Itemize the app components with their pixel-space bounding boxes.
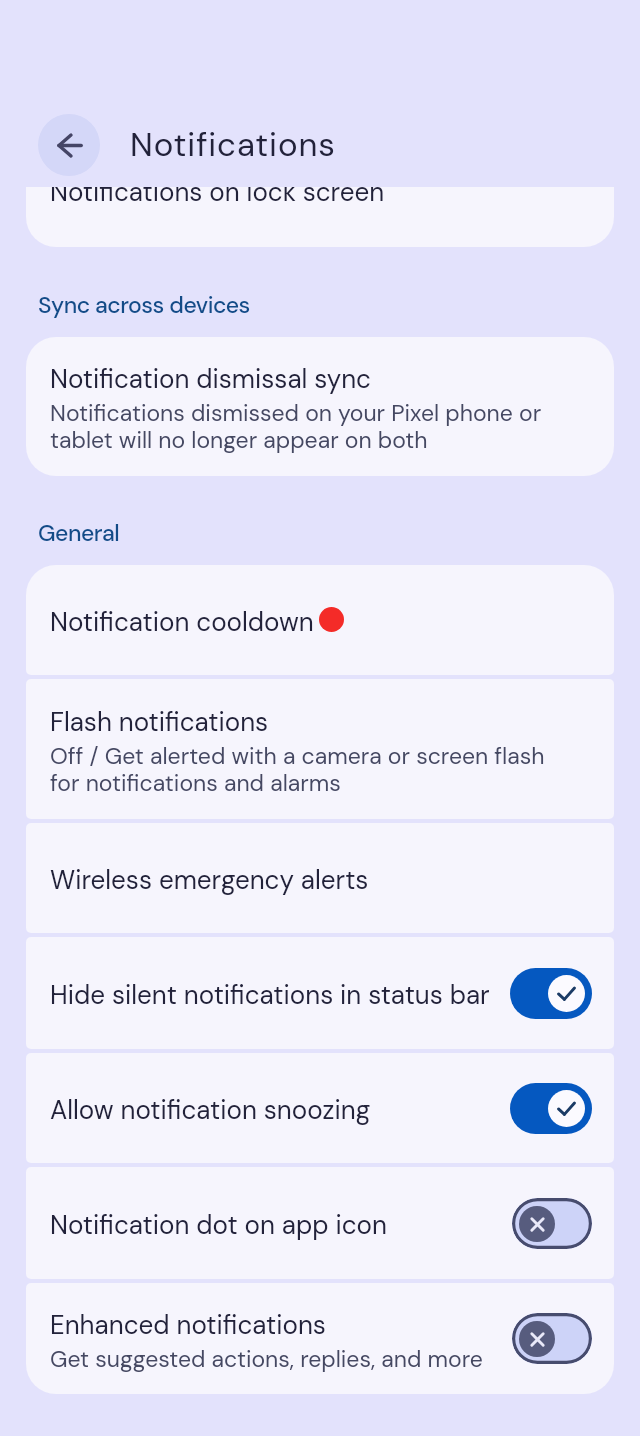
button[interactable]: Notification dismissal sync [26,337,614,476]
button[interactable]: Toggle on [510,1083,592,1134]
staticText: Enhanced notifications [50,1308,326,1342]
staticText: Notifications on lock screen [50,187,385,209]
staticText: Hide silent notifications in status bar [50,978,500,1012]
staticText: Off / Get alerted with a camera or scree… [50,741,545,798]
button[interactable]: Toggle on [510,968,592,1019]
staticText: Get suggested actions, replies, and more [50,1344,483,1374]
button[interactable]: Toggle off [512,1198,592,1249]
staticText: Notification cooldown [50,605,314,639]
staticText: Sync across devices [38,290,250,320]
button[interactable]: Back [38,114,100,176]
button[interactable]: Flash notifications [26,679,614,819]
button[interactable]: Notification cooldown [26,565,614,675]
button[interactable]: Notifications on lock screen [26,187,614,247]
button[interactable]: Wireless emergency alerts [26,823,614,933]
staticText: Allow notification snoozing [50,1093,500,1127]
button[interactable]: Allow notification snoozing [26,1053,614,1163]
button[interactable]: Hide silent notifications in status bar [26,937,614,1049]
staticText: General [38,518,120,548]
staticText: Flash notifications [50,705,269,739]
staticText: Wireless emergency alerts [50,863,369,897]
staticText: Notifications [130,123,336,166]
button[interactable]: Toggle off [512,1313,592,1364]
staticText: Notification dismissal sync [50,362,371,396]
button[interactable]: Notification dot on app icon [26,1167,614,1279]
staticText: Notifications dismissed on your Pixel ph… [50,398,542,455]
staticText: Notification dot on app icon [50,1208,502,1242]
button[interactable]: Enhanced notifications [26,1283,614,1394]
